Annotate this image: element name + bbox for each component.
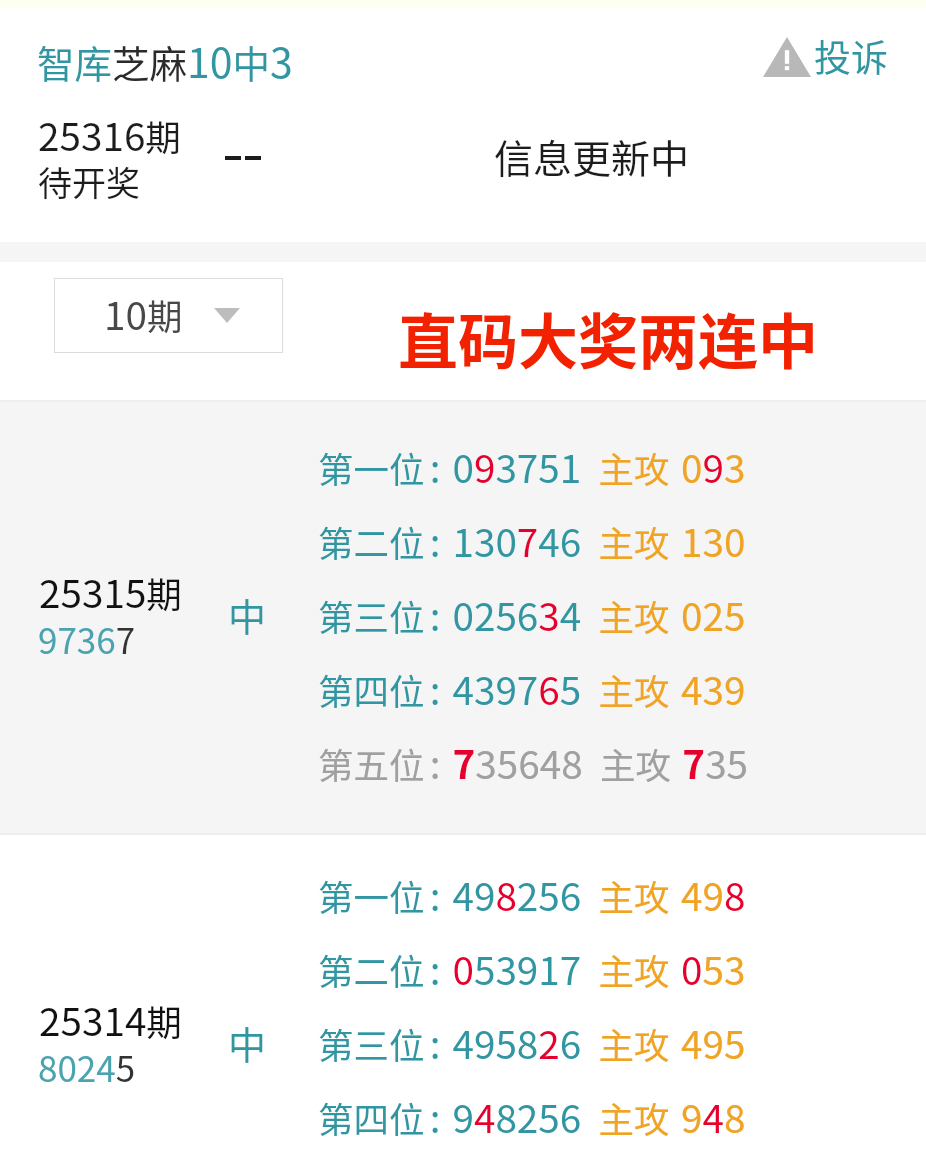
staticText: 中 <box>228 1015 267 1070</box>
staticText: 第四位 : 948256 主攻 948 <box>318 1088 746 1144</box>
staticText: 投诉 <box>814 29 888 83</box>
staticText: 中 <box>228 587 267 642</box>
staticText: 25314期 <box>39 991 182 1047</box>
staticText: 信息更新中 <box>494 128 690 184</box>
staticText: 25316期 <box>38 106 181 162</box>
button[interactable] <box>0 402 926 833</box>
button[interactable]: 智库芝麻10中3 <box>37 30 293 89</box>
staticText: 第五位 : 735648 主攻 735 <box>318 734 749 790</box>
staticText: 80245 <box>38 1041 136 1092</box>
staticText: 第一位 : 498256 主攻 498 <box>318 866 746 922</box>
button[interactable] <box>0 830 926 1154</box>
button[interactable]: 投诉 <box>755 22 895 88</box>
staticText: 第三位 : 495826 主攻 495 <box>318 1014 746 1070</box>
staticText: 第一位 : 093751 主攻 093 <box>318 438 746 494</box>
staticText: 待开奖 <box>38 157 140 206</box>
staticText: 25315期 <box>39 563 182 619</box>
staticText: 第四位 : 439765 主攻 439 <box>318 660 746 716</box>
staticText: 智库芝麻10中3 <box>37 30 293 89</box>
staticText: 97367 <box>38 613 136 664</box>
staticText: 第三位 : 025634 主攻 025 <box>318 586 746 642</box>
staticText: 直码大奖两连中 <box>398 294 818 381</box>
staticText: 10期 <box>104 285 183 341</box>
staticText: 第二位 : 053917 主攻 053 <box>318 940 746 996</box>
button[interactable]: 10期 <box>54 278 283 353</box>
staticText: 第二位 : 130746 主攻 130 <box>318 512 746 568</box>
